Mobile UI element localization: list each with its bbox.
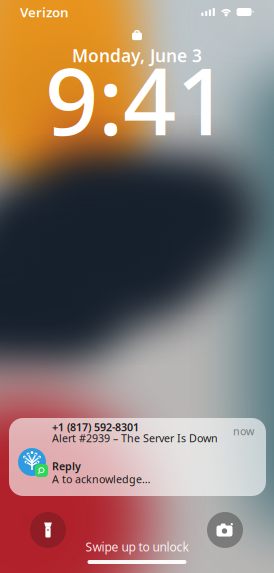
staticText: Verizon (20, 3, 69, 21)
staticText: A to acknowledge… (52, 472, 150, 486)
staticText: now (233, 424, 254, 438)
staticText: 9:41 (45, 37, 229, 161)
staticText: Monday, June 3 (72, 44, 202, 67)
button[interactable]: +1 (817) 592-8301 (9, 418, 266, 496)
staticText: Reply (52, 459, 81, 473)
button[interactable]: Camera (207, 512, 243, 548)
button[interactable]: Flashlight (30, 512, 66, 548)
staticText: Swipe up to unlock (85, 539, 188, 555)
staticText: Alert #2939 – The Server Is Down (52, 431, 218, 445)
staticText: +1 (817) 592-8301 (52, 420, 139, 434)
